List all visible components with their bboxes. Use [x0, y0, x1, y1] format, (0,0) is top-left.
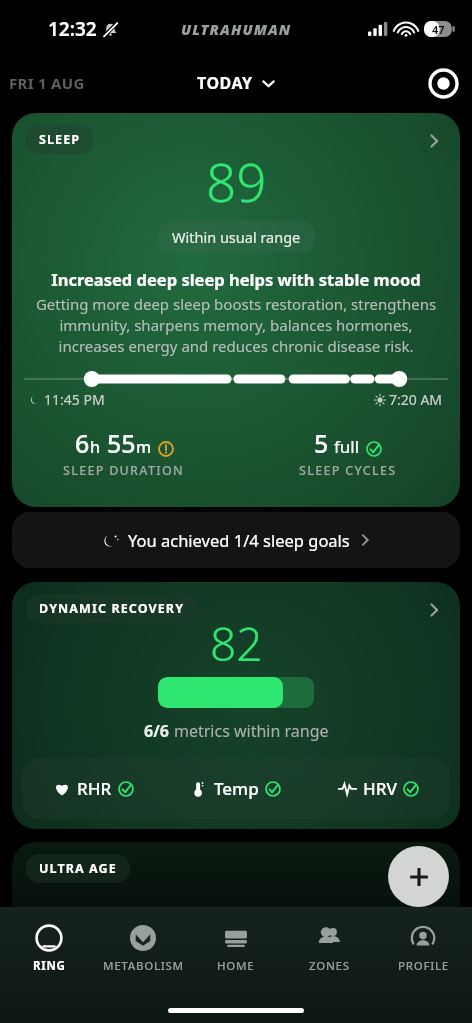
- staticText: ZONES: [309, 958, 350, 974]
- staticText: 11:45 PM: [44, 390, 105, 409]
- button[interactable]: Open sleep details: [420, 127, 448, 155]
- staticText: FRI 1 AUG: [9, 73, 85, 93]
- staticText: h: [90, 436, 101, 458]
- staticText: Within usual range: [172, 227, 301, 247]
- staticText: ULTRA AGE: [39, 860, 117, 877]
- staticText: HOME: [217, 958, 255, 974]
- staticText: SLEEP: [39, 131, 81, 148]
- staticText: You achieved 1/4 sleep goals: [128, 529, 350, 551]
- staticText: PROFILE: [398, 958, 449, 974]
- button[interactable]: HOME: [192, 921, 280, 976]
- staticText: 7:20 AM: [389, 390, 443, 409]
- staticText: HRV: [363, 777, 397, 800]
- staticText: m: [136, 436, 152, 458]
- button[interactable]: Open recovery details: [420, 596, 448, 624]
- staticText: TODAY: [197, 72, 253, 94]
- staticText: 55: [107, 426, 136, 460]
- staticText: ULTRAHUMAN: [181, 19, 292, 39]
- staticText: Increased deep sleep helps with stable m…: [22, 268, 450, 290]
- staticText: RHR: [77, 777, 112, 800]
- button[interactable]: HRV: [307, 758, 450, 819]
- staticText: 6: [75, 426, 90, 460]
- staticText: 12:32: [48, 16, 97, 42]
- staticText: Getting more deep sleep boosts restorati…: [28, 294, 444, 357]
- button[interactable]: Add entry: [388, 846, 449, 907]
- button[interactable]: PROFILE: [379, 921, 467, 976]
- button[interactable]: You achieved 1/4 sleep goals: [12, 512, 460, 568]
- button[interactable]: ULTRA AGE: [12, 842, 460, 932]
- staticText: 47: [432, 22, 445, 37]
- button[interactable]: TODAY: [189, 67, 283, 99]
- button[interactable]: Ring battery status: [425, 65, 461, 101]
- button[interactable]: ZONES: [285, 921, 373, 976]
- staticText: RING: [33, 958, 66, 974]
- staticText: Temp: [214, 777, 259, 800]
- staticText: METABOLISM: [103, 958, 184, 974]
- staticText: 5: [314, 426, 329, 460]
- staticText: SLEEP CYCLES: [299, 462, 397, 479]
- button[interactable]: RING: [5, 921, 93, 976]
- staticText: 89: [206, 145, 267, 217]
- button[interactable]: Temp: [164, 758, 307, 819]
- staticText: full: [334, 435, 360, 458]
- button[interactable]: DYNAMIC RECOVERY: [12, 582, 460, 829]
- button[interactable]: RHR: [22, 758, 164, 819]
- staticText: DYNAMIC RECOVERY: [39, 600, 185, 617]
- staticText: SLEEP DURATION: [63, 462, 185, 479]
- staticText: metrics within range: [174, 720, 329, 742]
- staticText: 6/6: [144, 720, 169, 742]
- button[interactable]: SLEEP: [12, 113, 460, 507]
- button[interactable]: METABOLISM: [99, 921, 187, 976]
- staticText: 82: [210, 612, 263, 675]
